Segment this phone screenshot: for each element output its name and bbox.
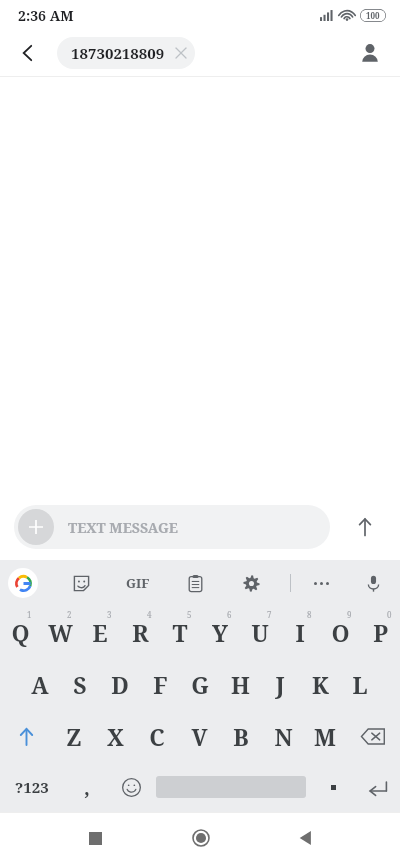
- staticText: X: [107, 721, 124, 752]
- staticText: P: [373, 617, 388, 648]
- button[interactable]: Period: [310, 762, 356, 812]
- staticText: E: [92, 617, 108, 648]
- button[interactable]: More options: [304, 566, 338, 600]
- staticText: TEXT MESSAGE: [68, 518, 178, 537]
- button[interactable]: K: [300, 658, 340, 710]
- staticText: G: [191, 669, 209, 700]
- staticText: O: [331, 617, 350, 648]
- button[interactable]: S: [60, 658, 100, 710]
- staticText: U: [251, 617, 269, 648]
- staticText: GIF: [126, 574, 150, 592]
- staticText: ?123: [15, 777, 49, 797]
- button[interactable]: Comma: [64, 762, 110, 812]
- staticText: H: [231, 669, 250, 700]
- button[interactable]: G: [180, 658, 220, 710]
- staticText: L: [352, 669, 368, 700]
- button[interactable]: E: [80, 606, 120, 658]
- staticText: 100: [366, 10, 380, 21]
- button[interactable]: Contact details: [350, 33, 390, 73]
- button[interactable]: B: [220, 710, 262, 762]
- button[interactable]: Home: [148, 813, 253, 863]
- staticText: Q: [11, 617, 30, 648]
- staticText: T: [172, 617, 188, 648]
- staticText: K: [312, 669, 329, 700]
- button[interactable]: A: [20, 658, 60, 710]
- staticText: Z: [66, 721, 82, 752]
- staticText: 4: [147, 609, 152, 620]
- staticText: 18730218809: [71, 43, 165, 63]
- staticText: 9: [347, 609, 352, 620]
- staticText: 5: [187, 609, 192, 620]
- button[interactable]: V: [178, 710, 220, 762]
- button[interactable]: Z: [53, 710, 94, 762]
- staticText: 1: [27, 609, 32, 620]
- staticText: 7: [267, 609, 272, 620]
- staticText: 3: [107, 609, 112, 620]
- staticText: C: [149, 721, 165, 752]
- button[interactable]: F: [140, 658, 180, 710]
- button[interactable]: M: [304, 710, 346, 762]
- staticText: 0: [387, 609, 392, 620]
- button[interactable]: Google: [8, 568, 38, 598]
- button[interactable]: GIF: [118, 563, 158, 603]
- button[interactable]: Recents: [43, 813, 148, 863]
- staticText: Y: [212, 617, 228, 648]
- staticText: V: [191, 721, 208, 752]
- button[interactable]: P: [360, 606, 400, 658]
- button[interactable]: W: [40, 606, 80, 658]
- staticText: R: [132, 617, 149, 648]
- button[interactable]: 18730218809: [57, 37, 195, 69]
- button[interactable]: ?123: [0, 762, 64, 812]
- staticText: ,: [84, 774, 90, 801]
- staticText: D: [111, 669, 129, 700]
- button[interactable]: J: [260, 658, 300, 710]
- button[interactable]: Clipboard: [178, 566, 212, 600]
- button[interactable]: H: [220, 658, 260, 710]
- staticText: 8: [307, 609, 312, 620]
- staticText: 2: [67, 609, 72, 620]
- button[interactable]: D: [100, 658, 140, 710]
- staticText: S: [73, 669, 87, 700]
- button[interactable]: Back: [8, 33, 48, 73]
- button[interactable]: Back: [253, 813, 358, 863]
- button[interactable]: Settings: [234, 566, 268, 600]
- staticText: 6: [227, 609, 232, 620]
- staticText: B: [233, 721, 249, 752]
- button[interactable]: X: [94, 710, 136, 762]
- button[interactable]: I: [280, 606, 320, 658]
- button[interactable]: Attach: [18, 509, 54, 545]
- button[interactable]: C: [136, 710, 178, 762]
- staticText: J: [275, 669, 285, 700]
- staticText: I: [295, 617, 305, 648]
- button[interactable]: Emoji: [110, 762, 152, 812]
- staticText: M: [314, 721, 336, 752]
- button[interactable]: Attach: [14, 505, 330, 549]
- button[interactable]: Q: [0, 606, 40, 658]
- button[interactable]: Y: [200, 606, 240, 658]
- button[interactable]: Shift: [0, 710, 53, 762]
- button[interactable]: N: [262, 710, 304, 762]
- button[interactable]: O: [320, 606, 360, 658]
- staticText: F: [153, 669, 168, 700]
- staticText: W: [48, 617, 73, 648]
- button[interactable]: L: [340, 658, 380, 710]
- button[interactable]: Backspace: [346, 710, 400, 762]
- button[interactable]: Voice input: [356, 566, 390, 600]
- button[interactable]: Enter: [356, 762, 400, 812]
- button[interactable]: Send: [344, 506, 386, 548]
- button[interactable]: Stickers: [64, 566, 98, 600]
- button[interactable]: U: [240, 606, 280, 658]
- button[interactable]: T: [160, 606, 200, 658]
- staticText: N: [274, 721, 293, 752]
- staticText: 2:36 AM: [18, 6, 74, 25]
- button[interactable]: R: [120, 606, 160, 658]
- staticText: A: [31, 669, 49, 700]
